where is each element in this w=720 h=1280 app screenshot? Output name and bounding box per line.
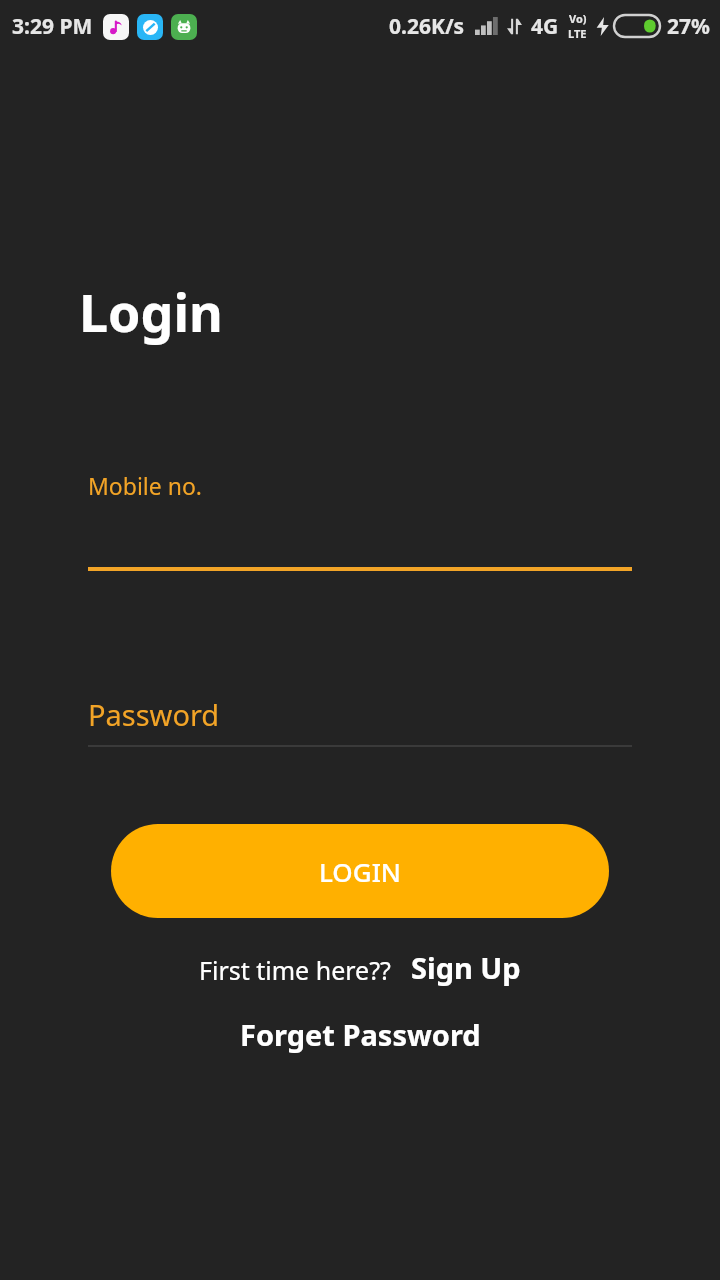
- staticText: 4G: [531, 12, 559, 41]
- staticText: 0.26K/s: [389, 12, 465, 41]
- staticText: 27%: [667, 12, 710, 41]
- button[interactable]: Forget Password: [240, 1015, 481, 1054]
- staticText: LOGIN: [319, 854, 402, 889]
- staticText: First time here??: [199, 953, 391, 987]
- staticText: Login: [79, 276, 223, 347]
- staticText: LTE: [568, 26, 587, 41]
- staticText: 3:29 PM: [12, 12, 93, 41]
- button[interactable]: LOGIN: [111, 824, 609, 918]
- staticText: Vo): [569, 11, 587, 26]
- button[interactable]: Sign Up: [411, 948, 521, 987]
- staticText: Password: [88, 695, 220, 734]
- staticText: Sign Up: [411, 948, 521, 987]
- staticText: Forget Password: [240, 1015, 481, 1054]
- staticText: Mobile no.: [88, 470, 203, 501]
